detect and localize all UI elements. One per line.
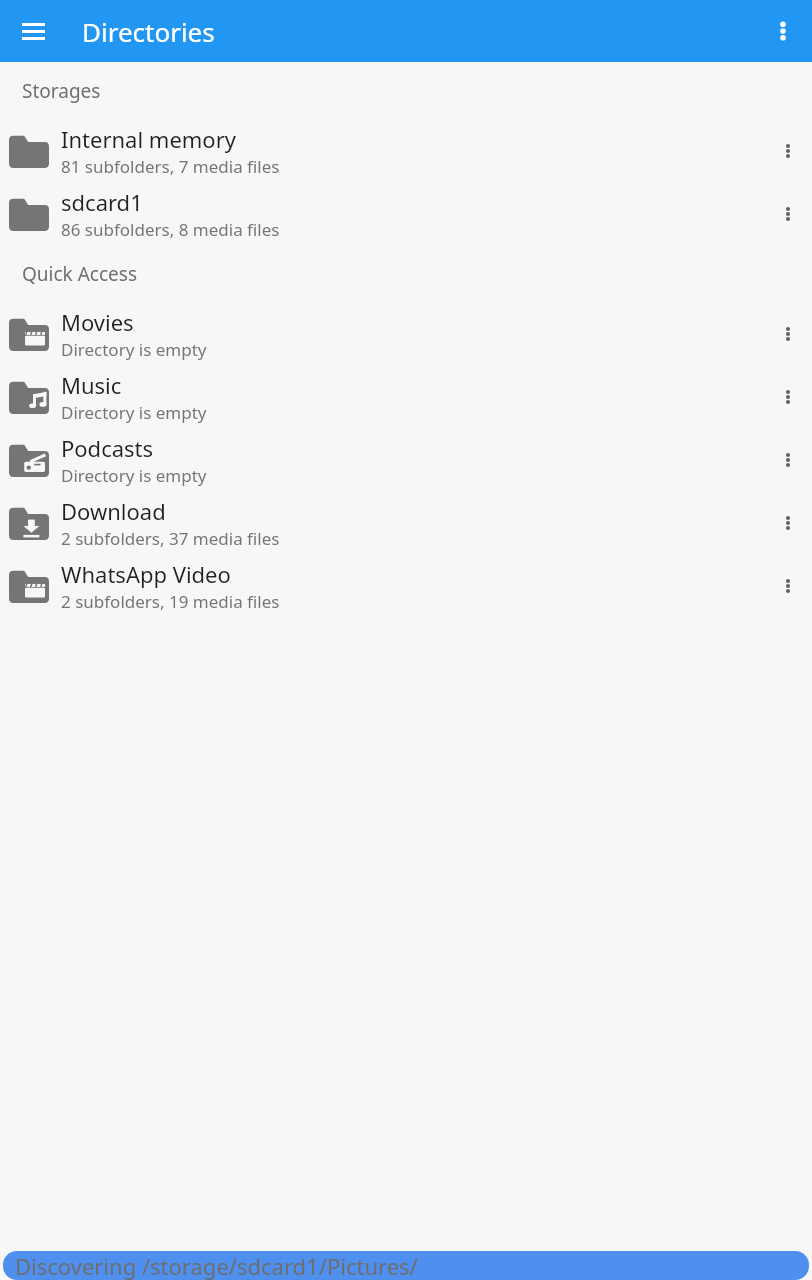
staticText: Discovering /storage/sdcard1/Pictures/ <box>15 1251 418 1280</box>
button[interactable]: sdcard1 <box>0 182 812 245</box>
button[interactable]: Download <box>0 491 812 554</box>
staticText: Storages <box>22 78 101 104</box>
button[interactable]: More options <box>760 8 806 54</box>
button[interactable]: More options for Music <box>768 365 808 428</box>
button[interactable]: More options for Movies <box>768 302 808 365</box>
staticText: Music <box>61 370 122 400</box>
button[interactable]: Music <box>0 365 812 428</box>
staticText: sdcard1 <box>61 187 143 217</box>
staticText: Movies <box>61 307 134 337</box>
staticText: Quick Access <box>22 261 137 287</box>
staticText: Directory is empty <box>61 401 207 424</box>
staticText: 86 subfolders, 8 media files <box>61 218 280 241</box>
staticText: Directory is empty <box>61 464 207 487</box>
button[interactable]: Discovering /storage/sdcard1/Pictures/ <box>3 1251 809 1280</box>
staticText: 81 subfolders, 7 media files <box>61 155 280 178</box>
staticText: WhatsApp Video <box>61 559 231 589</box>
staticText: Download <box>61 496 166 526</box>
staticText: Podcasts <box>61 433 154 463</box>
button[interactable]: More options for sdcard1 <box>768 182 808 245</box>
staticText: Internal memory <box>61 124 236 154</box>
button[interactable]: Internal memory <box>0 119 812 182</box>
button[interactable]: WhatsApp Video <box>0 554 812 617</box>
button[interactable]: More options for Download <box>768 491 808 554</box>
button[interactable]: Podcasts <box>0 428 812 491</box>
staticText: 2 subfolders, 19 media files <box>61 590 280 613</box>
staticText: 2 subfolders, 37 media files <box>61 527 280 550</box>
button[interactable]: More options for WhatsApp Video <box>768 554 808 617</box>
staticText: Directory is empty <box>61 338 207 361</box>
staticText: Directories <box>82 14 215 49</box>
button[interactable]: More options for Podcasts <box>768 428 808 491</box>
button[interactable]: Movies <box>0 302 812 365</box>
button[interactable]: More options for Internal memory <box>768 119 808 182</box>
button[interactable]: Open navigation drawer <box>10 8 56 54</box>
